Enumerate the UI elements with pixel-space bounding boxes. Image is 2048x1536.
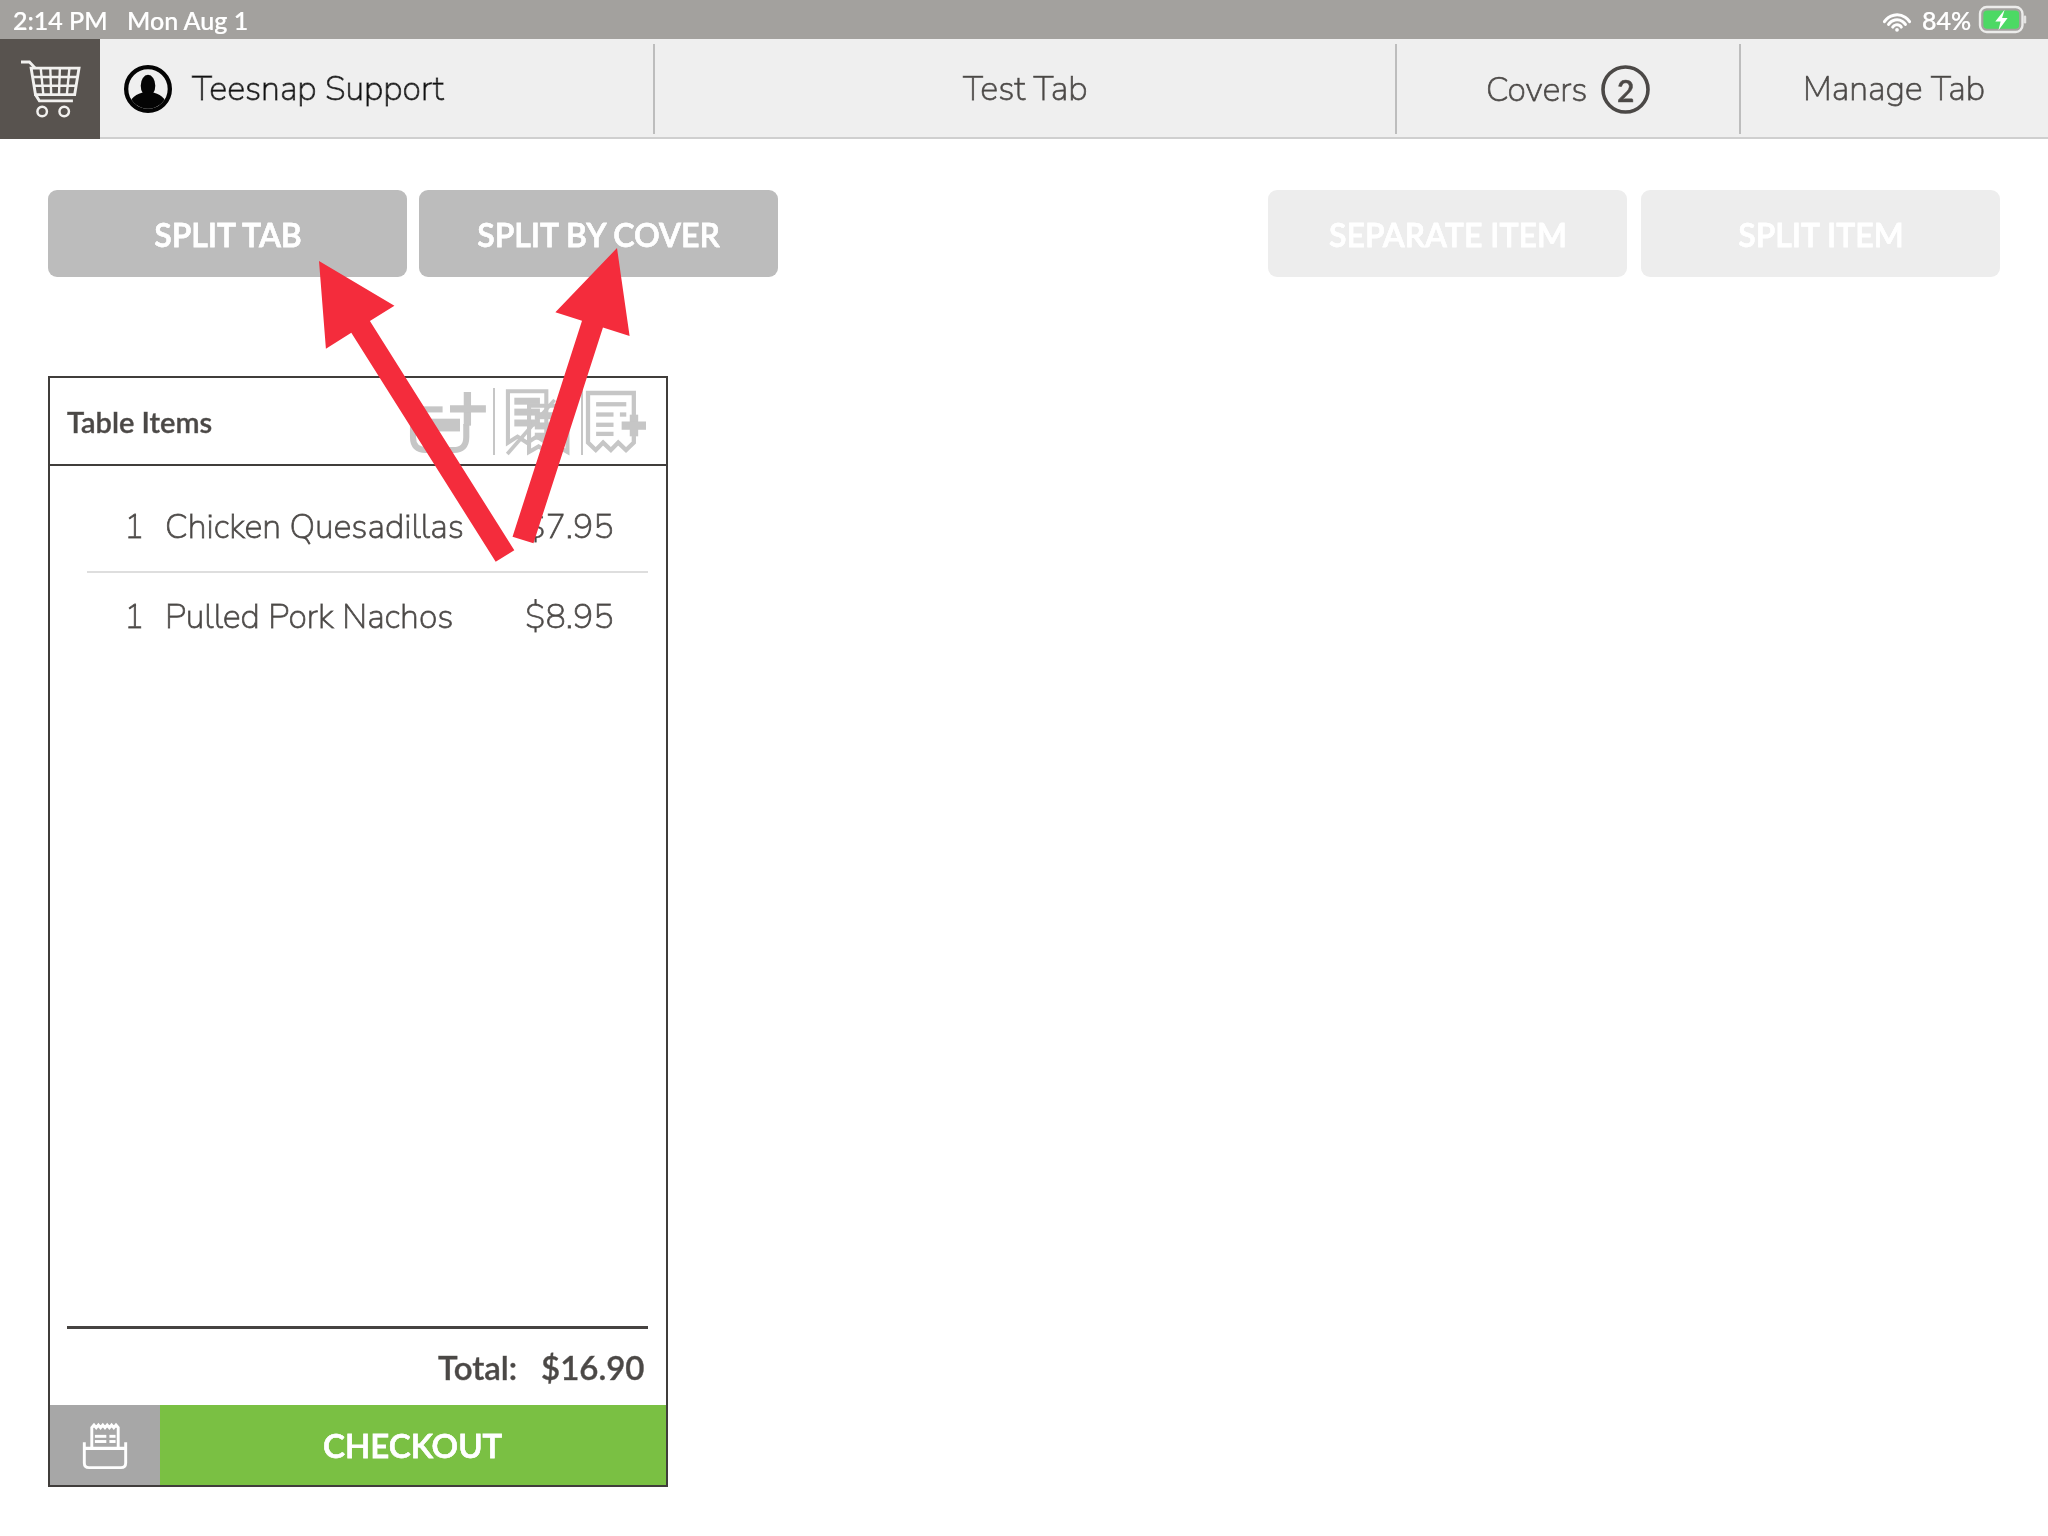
button[interactable]: Teesnap Support — [100, 39, 653, 139]
staticText: Total: — [438, 1347, 518, 1387]
staticText: $16.90 — [541, 1347, 645, 1387]
staticText: 84% — [1922, 5, 1972, 35]
staticText: Pulled Pork Nachos — [165, 594, 454, 640]
staticText: SEPARATE ITEM — [1329, 215, 1567, 253]
staticText: Covers — [1486, 67, 1588, 113]
staticText: 1 — [124, 594, 145, 640]
button[interactable]: Cart — [0, 39, 100, 139]
staticText: 2 — [1617, 72, 1635, 108]
staticText: Chicken Quesadillas — [165, 504, 464, 550]
button[interactable]: CHECKOUT — [160, 1405, 666, 1485]
staticText: $7.95 — [525, 504, 614, 550]
staticText: Covers — [1486, 67, 1588, 113]
staticText: 2:14 PM — [13, 5, 108, 35]
button[interactable]: Test Tab — [655, 39, 1395, 139]
button[interactable]: Covers — [1397, 39, 1739, 139]
staticText: Table Items — [67, 404, 213, 439]
staticText: 1 — [124, 504, 145, 550]
staticText: Table Items — [67, 404, 213, 439]
button[interactable]: 1 — [50, 573, 666, 661]
button[interactable]: SPLIT TAB — [48, 190, 407, 277]
staticText: Teesnap Support — [192, 66, 444, 112]
button[interactable]: SPLIT BY COVER — [419, 190, 778, 277]
staticText: SEPARATE ITEM — [1329, 215, 1567, 253]
staticText: SPLIT BY COVER — [477, 215, 720, 253]
button[interactable]: Split receipt — [495, 387, 581, 455]
staticText: Manage Tab — [1803, 66, 1986, 112]
staticText: Test Tab — [963, 66, 1088, 112]
staticText: SPLIT ITEM — [1738, 215, 1904, 253]
staticText: Teesnap Support — [192, 66, 444, 112]
staticText: $16.90 — [541, 1347, 645, 1387]
staticText: SPLIT ITEM — [1738, 215, 1904, 253]
button[interactable]: Manage Tab — [1741, 39, 2048, 139]
button[interactable]: Add item — [407, 387, 493, 455]
button[interactable]: Print receipt — [50, 1405, 160, 1485]
staticText: $7.95 — [525, 504, 614, 550]
staticText: Mon Aug 1 — [127, 5, 249, 35]
staticText: Chicken Quesadillas — [165, 504, 464, 550]
staticText: SPLIT TAB — [154, 215, 302, 253]
staticText: $8.95 — [525, 594, 614, 640]
staticText: Pulled Pork Nachos — [165, 594, 454, 640]
staticText: Manage Tab — [1803, 66, 1986, 112]
staticText: $8.95 — [525, 594, 614, 640]
staticText: Total: — [438, 1347, 518, 1387]
staticText: CHECKOUT — [323, 1425, 503, 1465]
staticText: 1 — [124, 594, 145, 640]
staticText: SPLIT BY COVER — [477, 215, 720, 253]
button[interactable]: SPLIT ITEM — [1641, 190, 2000, 277]
button[interactable]: Add receipt — [583, 387, 650, 455]
staticText: SPLIT TAB — [154, 215, 302, 253]
button[interactable]: 1 — [50, 483, 666, 571]
staticText: CHECKOUT — [323, 1425, 503, 1465]
staticText: Test Tab — [963, 66, 1088, 112]
button[interactable]: SEPARATE ITEM — [1268, 190, 1627, 277]
staticText: 2 — [1617, 72, 1635, 108]
staticText: 1 — [124, 504, 145, 550]
